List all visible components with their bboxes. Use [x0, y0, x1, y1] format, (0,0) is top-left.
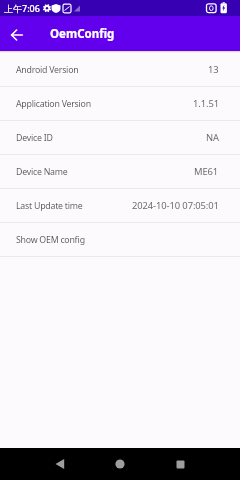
staticText: OemConfig: [50, 26, 115, 42]
button[interactable]: Application Version: [0, 87, 240, 121]
button[interactable]: [98, 448, 142, 480]
button[interactable]: Last Update time: [0, 189, 240, 223]
button[interactable]: Device ID: [0, 121, 240, 155]
staticText: Show OEM config: [16, 234, 85, 246]
staticText: Device ID: [16, 132, 53, 144]
button[interactable]: [38, 448, 82, 480]
staticText: Application Version: [16, 98, 91, 110]
button[interactable]: Show OEM config: [0, 223, 240, 257]
button[interactable]: Device Name: [0, 155, 240, 189]
staticText: NA: [206, 131, 219, 144]
staticText: 1.1.51: [193, 97, 219, 110]
staticText: 2024-10-10 07:05:01: [132, 199, 219, 212]
staticText: 13: [208, 63, 219, 76]
staticText: Android Version: [16, 64, 79, 76]
button[interactable]: [0, 17, 34, 51]
staticText: ME61: [194, 165, 219, 178]
staticText: 上午7:06: [4, 2, 40, 14]
button[interactable]: [158, 448, 202, 480]
button[interactable]: Android Version: [0, 53, 240, 87]
staticText: Last Update time: [16, 200, 83, 212]
staticText: Device Name: [16, 166, 68, 178]
